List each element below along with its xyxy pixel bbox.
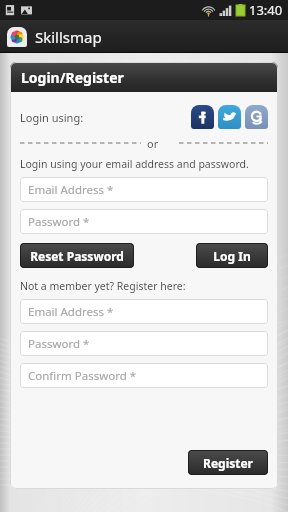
button[interactable]: Email Address * [20,299,268,324]
staticText: Email Address * [28,182,114,198]
button[interactable]: Twitter login [218,105,241,129]
staticText: Password * [28,336,90,352]
staticText: Not a member yet? Register here: [20,279,186,293]
staticText: Email Address * [28,304,114,320]
button[interactable]: Password * [20,331,268,356]
button[interactable]: Register [188,450,268,475]
staticText: Login using: [20,110,84,125]
staticText: Skillsmap [35,27,102,47]
button[interactable]: Password * [20,209,268,234]
button[interactable]: Log In [196,243,268,268]
button[interactable]: Email Address * [20,177,268,202]
button[interactable]: Google login [245,105,268,129]
staticText: Password * [28,214,90,230]
staticText: Register [203,455,253,471]
staticText: Log In [213,248,251,264]
button[interactable]: Facebook login [191,105,214,129]
staticText: 13:40 [249,1,283,19]
staticText: Confirm Password * [28,368,137,384]
staticText: Login using your email address and passw… [20,157,249,171]
staticText: Reset Password [30,248,124,264]
button[interactable]: Confirm Password * [20,363,268,388]
staticText: Login/Register [21,68,124,87]
button[interactable]: Reset Password [20,243,134,268]
staticText: or [147,136,159,150]
